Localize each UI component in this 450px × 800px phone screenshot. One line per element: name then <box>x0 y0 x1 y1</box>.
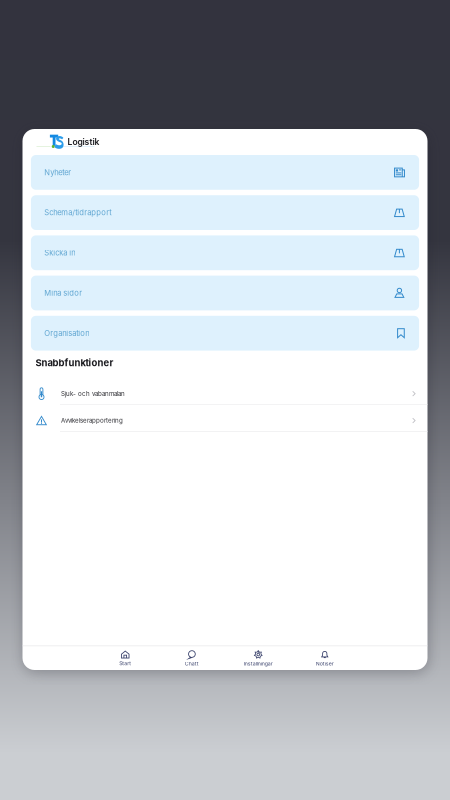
staticText: Notiser <box>316 661 334 667</box>
button[interactable]: Inställningar <box>225 650 291 667</box>
button[interactable]: Nyheter <box>31 155 419 190</box>
button[interactable]: Notiser <box>291 650 358 667</box>
button[interactable]: Organisation <box>31 316 419 351</box>
button[interactable]: Skicka in <box>31 235 419 270</box>
staticText: Logistik <box>67 137 99 147</box>
button[interactable]: Avvikelserapportering <box>22 405 427 432</box>
button[interactable]: Schema/tidrapport <box>31 195 419 230</box>
button[interactable]: Start <box>92 651 158 666</box>
button[interactable]: Mina sidor <box>31 276 419 310</box>
staticText: Inställningar <box>244 661 273 667</box>
button[interactable]: Sjuk- och vabanmälan <box>22 378 427 405</box>
staticText: Nyheter <box>44 168 71 177</box>
staticText: Start <box>119 660 131 666</box>
staticText: Snabbfunktioner <box>35 357 113 369</box>
staticText: Mina sidor <box>44 288 82 298</box>
staticText: Organisation <box>44 329 89 338</box>
staticText: Schema/tidrapport <box>44 208 111 217</box>
staticText: Avvikelserapportering <box>61 417 123 424</box>
staticText: Skicka in <box>44 248 75 257</box>
button[interactable]: Chatt <box>158 650 225 667</box>
staticText: Sjuk- och vabanmälan <box>61 390 125 397</box>
staticText: Chatt <box>185 661 199 667</box>
